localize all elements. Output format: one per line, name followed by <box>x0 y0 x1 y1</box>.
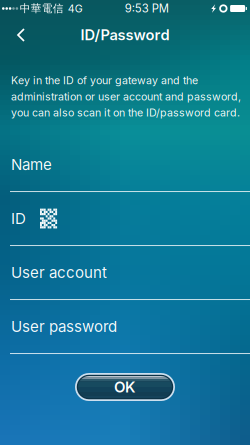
staticText: Name <box>11 155 52 174</box>
staticText: 中華電信 <box>20 2 64 15</box>
staticText: User account <box>11 263 107 282</box>
staticText: 4G <box>68 2 83 15</box>
staticText: administration or user account and passw… <box>11 90 241 103</box>
staticText: 9:53 PM <box>125 2 169 15</box>
staticText: User password <box>11 317 117 336</box>
staticText: ID/Password <box>80 26 169 44</box>
staticText: OK <box>114 378 136 396</box>
staticText: Key in the ID of your gateway and the <box>11 74 198 87</box>
button[interactable]: OK <box>75 373 175 401</box>
staticText: you can also scan it on the ID/password … <box>11 106 240 119</box>
staticText: ID <box>11 209 26 228</box>
button[interactable]: Back <box>6 20 36 50</box>
button[interactable]: Scan ID from QR code <box>40 209 57 228</box>
